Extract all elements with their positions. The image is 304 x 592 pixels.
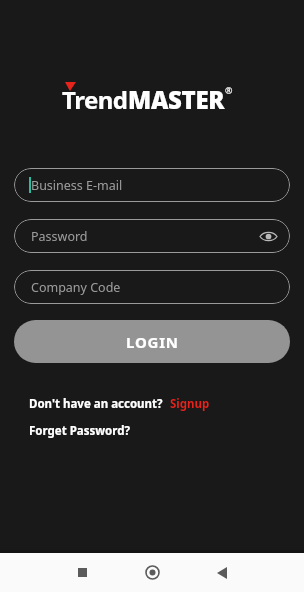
button[interactable]: Password (14, 219, 290, 253)
button[interactable]: Recents (62, 553, 102, 592)
button[interactable]: LOGIN (14, 320, 290, 363)
staticText: ® (225, 84, 233, 96)
button[interactable]: Back (202, 553, 242, 592)
button[interactable]: Forget Password? (29, 423, 130, 439)
staticText: MASTER (128, 83, 225, 113)
staticText: LOGIN (126, 332, 179, 352)
staticText: Signup (170, 396, 210, 412)
staticText: Trend (62, 83, 128, 113)
button[interactable]: Show password (256, 224, 280, 248)
button[interactable]: Signup (170, 396, 210, 412)
staticText: Business E-mail (31, 177, 123, 194)
button[interactable]: Home (132, 553, 172, 592)
staticText: Forget Password? (29, 423, 130, 439)
staticText: Password (31, 228, 88, 245)
staticText: Don't have an account? (29, 396, 163, 412)
staticText: Company Code (31, 279, 121, 296)
button[interactable]: Company Code (14, 270, 290, 304)
button[interactable]: Business E-mail (14, 168, 290, 202)
